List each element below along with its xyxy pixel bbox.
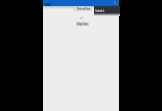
staticText: Normal View (77, 7, 90, 11)
button[interactable]: Map View (76, 22, 89, 26)
staticText: Map View (77, 22, 88, 26)
button[interactable]: Contact Us (94, 6, 120, 13)
staticText: or (80, 16, 83, 20)
button[interactable]: MW (45, 3, 51, 7)
button[interactable]: Normal View (74, 7, 92, 11)
staticText: Contact Us (95, 9, 104, 13)
